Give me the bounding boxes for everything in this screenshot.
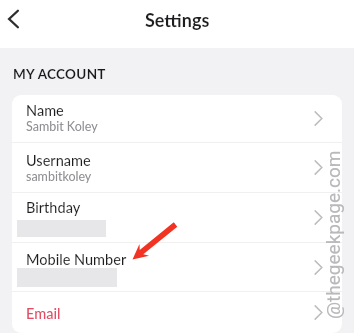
button[interactable]: Email [12, 292, 342, 333]
staticText: sambitkoley [26, 169, 92, 184]
staticText: Birthday [26, 199, 81, 216]
staticText: MY ACCOUNT [13, 66, 106, 82]
staticText: Sambit Koley [26, 119, 98, 134]
button[interactable]: Username [12, 143, 342, 192]
staticText: Name [26, 102, 64, 119]
button[interactable]: Mobile Number [12, 243, 342, 291]
button[interactable]: Name [12, 95, 342, 142]
staticText: Mobile Number [26, 251, 127, 268]
staticText: Settings [145, 9, 210, 31]
staticText: Email [26, 305, 61, 322]
button[interactable]: Back [0, 0, 33, 39]
staticText: Username [26, 152, 91, 169]
staticText: @thegeekpage.com [322, 150, 344, 319]
button[interactable]: Birthday [12, 193, 342, 242]
